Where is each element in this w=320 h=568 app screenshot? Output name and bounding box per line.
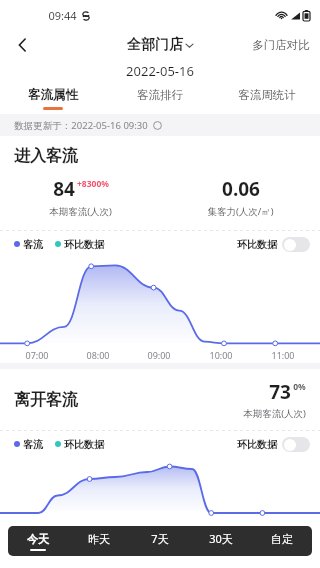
button[interactable]: 今天 [8,526,68,556]
staticText: 数据更新于：2022-05-16 09:30 [14,119,148,132]
staticText: 客流排行 [137,88,183,102]
staticText: 客流 [23,238,43,251]
staticText: 集客力(人次/㎡) [207,205,274,218]
staticText: 客流属性 [28,87,78,103]
staticText: 客流周统计 [238,88,296,102]
staticText: 全部门店 [127,36,183,54]
staticText: 11:00 [271,349,295,361]
button[interactable]: 7天 [129,526,190,556]
button[interactable]: 环比数据 [237,437,310,452]
staticText: 多门店对比 [252,38,310,52]
staticText: 环比数据 [237,238,277,251]
staticText: 07:00 [25,349,49,361]
button[interactable]: 全部门店 [127,36,193,54]
staticText: 09:00 [147,349,171,361]
staticText: 09:44 [48,8,77,23]
button[interactable]: 多门店对比 [242,38,320,52]
button[interactable]: 客流排行 [106,82,213,114]
staticText: 环比数据 [64,238,104,251]
staticText: 84 [53,176,75,202]
staticText: 2022-05-16 [126,62,194,80]
staticText: 08:00 [86,349,110,361]
staticText: +8300% [77,178,109,190]
staticText: 昨天 [88,532,110,546]
button[interactable]: 客流周统计 [213,82,320,114]
button[interactable]: 客流属性 [0,82,106,114]
staticText: 10:00 [209,349,233,361]
staticText: 本期客流(人次) [49,205,112,218]
staticText: 0% [293,381,306,393]
staticText: 73 [269,379,291,405]
staticText: 离开客流 [14,390,78,410]
staticText: 客流 [23,438,43,451]
button[interactable]: 昨天 [68,526,129,556]
staticText: 今天 [27,532,49,546]
button[interactable]: 自定 [251,526,312,556]
staticText: 7天 [151,531,169,546]
button[interactable]: Back [8,30,38,60]
staticText: 本期客流(人次) [243,407,306,420]
staticText: 环比数据 [237,438,277,451]
staticText: 0.06 [222,176,260,202]
button[interactable]: 环比数据 [237,237,310,252]
staticText: 进入客流 [14,146,78,166]
staticText: 环比数据 [64,438,104,451]
staticText: 自定 [271,532,293,546]
staticText: 30天 [209,531,233,546]
button[interactable]: 30天 [190,526,251,556]
